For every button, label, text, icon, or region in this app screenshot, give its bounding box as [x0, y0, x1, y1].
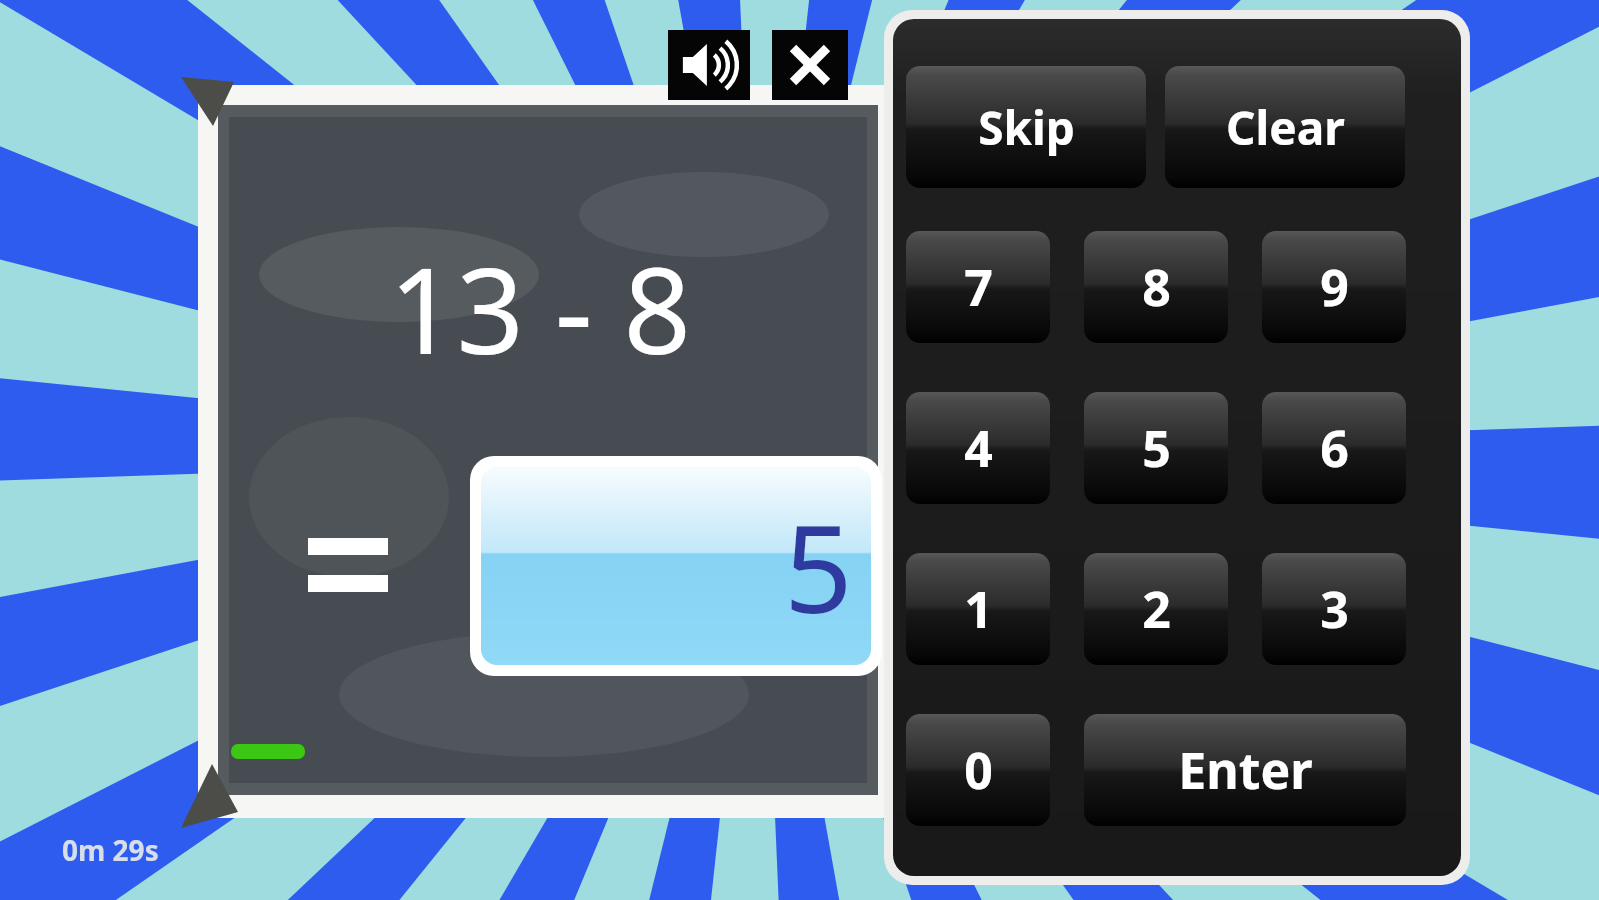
- staticText: 0m 29s: [62, 831, 159, 869]
- staticText: 4: [964, 414, 993, 482]
- staticText: 6: [1320, 414, 1349, 482]
- staticText: 0: [964, 736, 993, 804]
- staticText: 7: [964, 253, 993, 321]
- button[interactable]: Skip: [906, 66, 1146, 188]
- button[interactable]: 2: [1084, 553, 1228, 665]
- button[interactable]: 9: [1262, 231, 1406, 343]
- button[interactable]: 7: [906, 231, 1050, 343]
- staticText: 5: [784, 485, 853, 648]
- button[interactable]: 6: [1262, 392, 1406, 504]
- staticText: 8: [1142, 253, 1171, 321]
- button[interactable]: 0: [906, 714, 1050, 826]
- button[interactable]: Clear: [1165, 66, 1405, 188]
- button[interactable]: 5: [1084, 392, 1228, 504]
- button[interactable]: 8: [1084, 231, 1228, 343]
- button[interactable]: 3: [1262, 553, 1406, 665]
- button[interactable]: Sound: [668, 30, 750, 100]
- button[interactable]: Enter: [1084, 714, 1406, 826]
- staticText: Clear: [1226, 96, 1345, 159]
- staticText: Skip: [978, 96, 1075, 159]
- staticText: 1: [964, 575, 993, 643]
- staticText: 13 - 8: [389, 228, 691, 378]
- button[interactable]: 4: [906, 392, 1050, 504]
- staticText: 9: [1320, 253, 1349, 321]
- staticText: Enter: [1178, 736, 1313, 804]
- staticText: 2: [1142, 575, 1171, 643]
- staticText: 5: [1142, 414, 1171, 482]
- button[interactable]: 5: [470, 456, 882, 676]
- button[interactable]: 1: [906, 553, 1050, 665]
- button[interactable]: Close: [772, 30, 848, 100]
- staticText: 3: [1320, 575, 1349, 643]
